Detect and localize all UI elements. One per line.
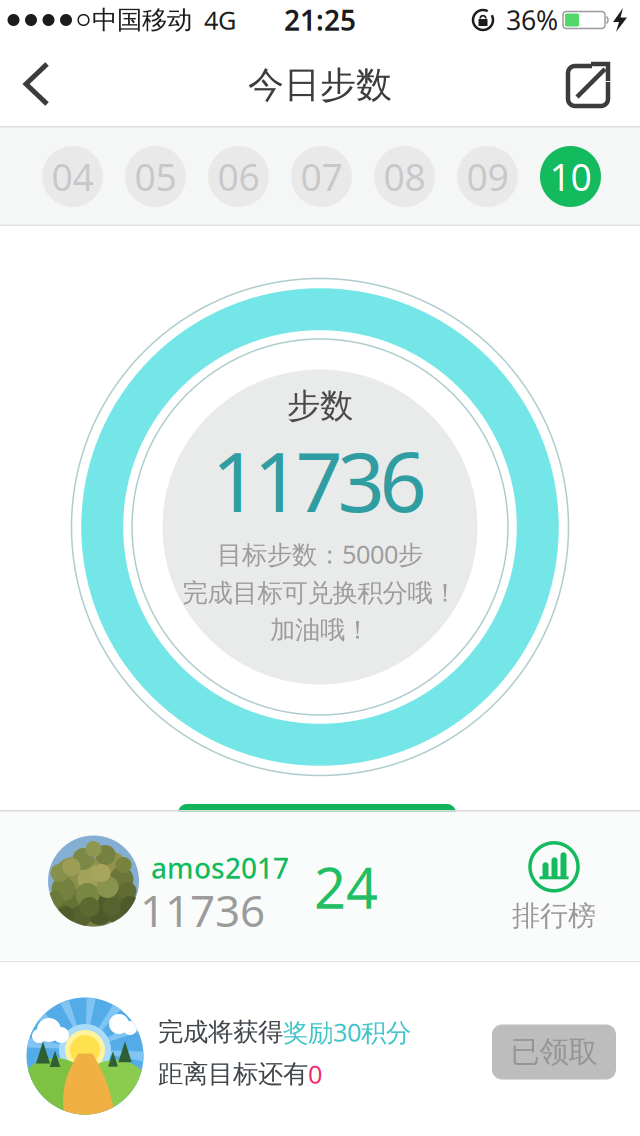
button[interactable]: 06	[208, 146, 269, 207]
staticText: 08	[383, 152, 425, 201]
staticText: 06	[217, 152, 259, 201]
button[interactable]: Back	[15, 61, 59, 107]
button[interactable]: 04	[42, 146, 103, 207]
staticText: 09	[466, 152, 508, 201]
button[interactable]: 10	[540, 146, 601, 207]
staticText: 36%	[506, 2, 558, 38]
staticText: 排行榜	[512, 899, 596, 933]
staticText: 距离目标还有	[158, 1058, 308, 1089]
staticText: 0	[308, 1057, 322, 1091]
staticText: 步数	[287, 385, 353, 426]
button[interactable]: 07	[291, 146, 352, 207]
staticText: 加油哦！	[270, 614, 370, 645]
button[interactable]: 05	[125, 146, 186, 207]
staticText: 04	[51, 152, 93, 201]
staticText: 21:25	[284, 1, 356, 39]
staticText: 05	[134, 152, 176, 201]
staticText: 完成将获得	[158, 1016, 283, 1047]
staticText: 07	[300, 152, 342, 201]
staticText: 奖励30积分	[283, 1015, 411, 1049]
staticText: amos2017	[151, 849, 289, 887]
staticText: 已领取	[510, 1034, 597, 1070]
button[interactable]: 09	[457, 146, 518, 207]
button[interactable]: Share	[564, 60, 612, 108]
button[interactable]: 08	[374, 146, 435, 207]
button[interactable]: 排行榜	[512, 843, 596, 933]
button[interactable]: 已领取	[492, 1024, 616, 1079]
button[interactable]: 提交步数	[178, 804, 456, 834]
staticText: 24	[314, 850, 378, 924]
staticText: 11736	[140, 881, 265, 939]
staticText: 11736	[211, 425, 426, 535]
staticText: 4G	[204, 3, 236, 37]
staticText: 10	[549, 152, 591, 201]
staticText: 完成目标可兑换积分哦！	[182, 577, 457, 608]
staticText: 今日步数	[248, 63, 392, 107]
staticText: 中国移动	[92, 4, 192, 35]
staticText: 目标步数：5000步	[217, 537, 423, 571]
